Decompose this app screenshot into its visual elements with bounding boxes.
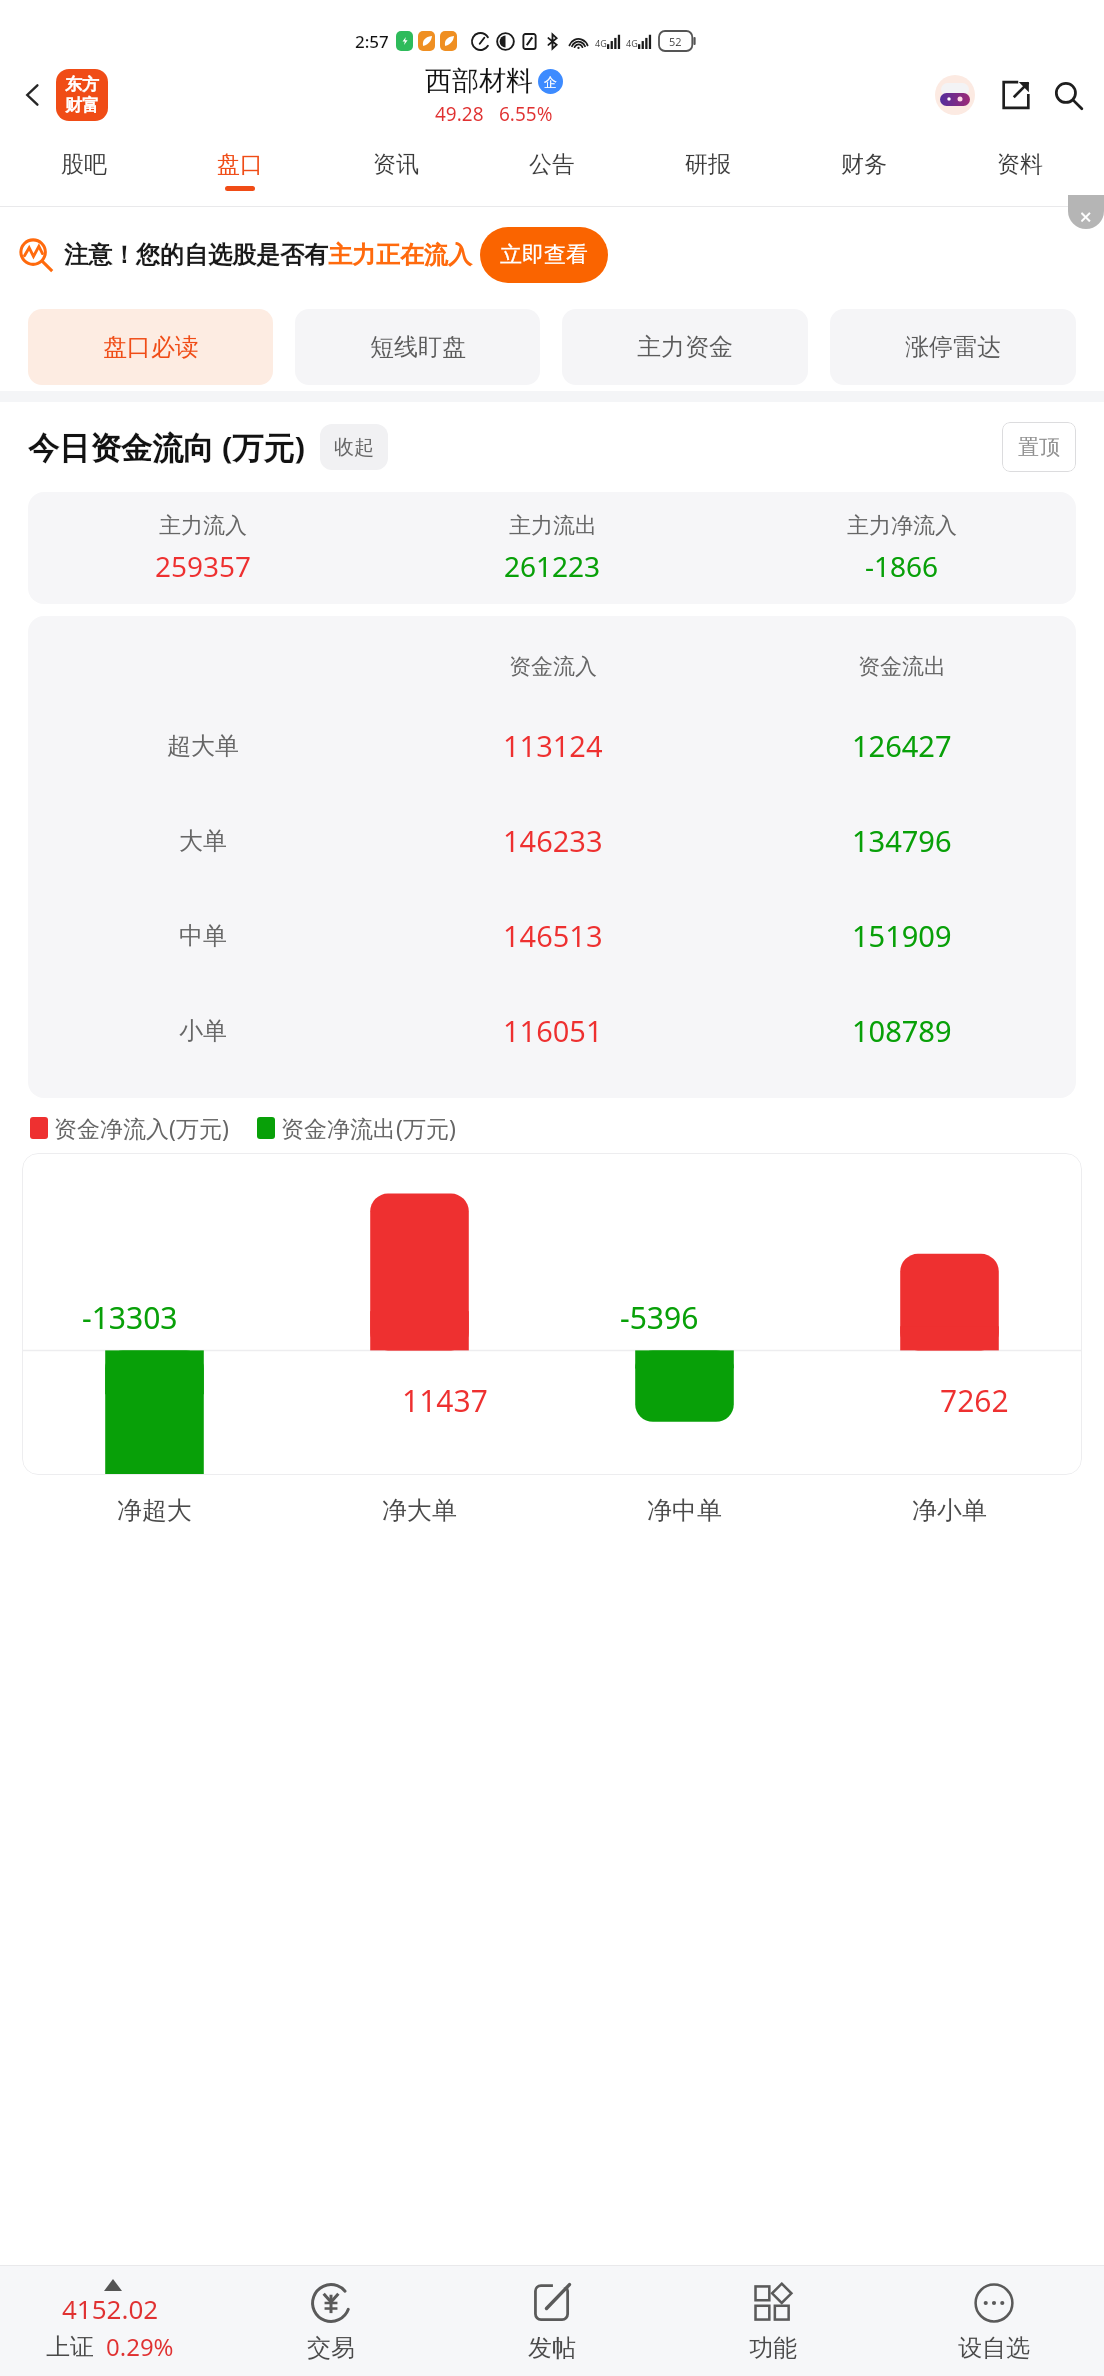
button[interactable]: 主力资金 [562, 309, 808, 385]
staticText: 盘口 [217, 150, 263, 179]
staticText: 4152.02 [62, 2291, 159, 2326]
staticText: 小单 [179, 1016, 227, 1046]
staticText: 企 [544, 74, 557, 90]
staticText: 大单 [179, 826, 227, 856]
staticText: 置顶 [1018, 434, 1060, 460]
staticText: 4G [626, 37, 638, 49]
staticText: ✕ [1079, 208, 1093, 227]
staticText: 49.28 [435, 101, 484, 127]
staticText: 主力正在流入 [328, 240, 472, 270]
button[interactable]: 公告 [474, 134, 630, 206]
button[interactable]: Close ad [1068, 195, 1104, 229]
staticText: 涨停雷达 [905, 332, 1001, 362]
staticText: 主力流出 [509, 512, 597, 540]
staticText: 6.55% [499, 101, 553, 127]
button[interactable]: 股吧 [6, 134, 162, 206]
button[interactable]: 收起 [320, 424, 388, 470]
button[interactable]: 西部材料 [425, 64, 563, 127]
button[interactable]: Share [990, 69, 1042, 121]
staticText: 财务 [841, 150, 887, 179]
staticText: -13303 [82, 1297, 178, 1338]
staticText: 东方 [65, 74, 99, 95]
button[interactable]: 资料 [942, 134, 1098, 206]
staticText: 主力净流入 [847, 512, 957, 540]
button[interactable]: 资讯 [318, 134, 474, 206]
button[interactable]: 功能 [662, 2266, 883, 2376]
staticText: -5396 [620, 1297, 699, 1338]
staticText: 财富 [65, 95, 99, 116]
staticText: 研报 [685, 150, 731, 179]
button[interactable]: 置顶 [1002, 422, 1076, 472]
button[interactable]: Search [1042, 69, 1094, 121]
staticText: 盘口必读 [103, 332, 199, 362]
staticText: 主力资金 [637, 332, 733, 362]
button[interactable]: Back [10, 72, 56, 118]
staticText: 134796 [852, 821, 952, 860]
staticText: 资金净流出(万元) [281, 1112, 456, 1143]
staticText: 2:57 [355, 30, 389, 53]
staticText: 151909 [852, 916, 952, 955]
button[interactable]: 涨停雷达 [830, 309, 1076, 385]
staticText: 收起 [334, 435, 374, 460]
button[interactable]: 设自选 [883, 2266, 1104, 2376]
button[interactable]: -13303 [22, 1153, 1082, 1475]
staticText: 资金流出 [858, 653, 946, 681]
button[interactable]: 短线盯盘 [295, 309, 540, 385]
button[interactable]: East Money [56, 69, 108, 121]
staticText: 净大单 [382, 1495, 457, 1526]
staticText: 资讯 [373, 150, 419, 179]
button[interactable]: 盘口 [162, 134, 318, 206]
staticText: 资金净流入(万元) [54, 1112, 229, 1143]
staticText: 短线盯盘 [370, 332, 466, 362]
button[interactable]: 研报 [630, 134, 786, 206]
staticText: 公告 [529, 150, 575, 179]
staticText: 发帖 [528, 2333, 576, 2363]
button[interactable]: 立即查看 [480, 227, 608, 283]
button[interactable]: 盘口必读 [28, 309, 273, 385]
staticText: 净超大 [117, 1495, 192, 1526]
staticText: 中单 [179, 921, 227, 951]
staticText: 11437 [402, 1380, 488, 1421]
staticText: 主力流入 [159, 512, 247, 540]
staticText: 立即查看 [500, 241, 588, 269]
button[interactable]: 发帖 [441, 2266, 662, 2376]
staticText: 交易 [307, 2333, 355, 2363]
staticText: 注意！您的自选股是否有 [64, 240, 328, 270]
staticText: 113124 [503, 726, 603, 765]
staticText: 108789 [852, 1011, 952, 1050]
staticText: 0.29% [106, 2330, 174, 2363]
staticText: 资料 [997, 150, 1043, 179]
staticText: 146233 [503, 821, 603, 860]
staticText: 功能 [749, 2333, 797, 2363]
staticText: 126427 [852, 726, 952, 765]
staticText: 资金流入 [509, 653, 597, 681]
staticText: 上证 [46, 2332, 94, 2362]
button[interactable]: 交易 [220, 2266, 441, 2376]
staticText: 52 [669, 34, 682, 49]
button[interactable]: AI assistant [928, 68, 982, 122]
staticText: 261223 [504, 547, 601, 585]
button[interactable]: 主力流入 [28, 492, 1076, 604]
button[interactable]: 4152.02 [0, 2266, 220, 2376]
staticText: 今日资金流向 (万元) [28, 426, 306, 468]
staticText: 7262 [940, 1380, 1009, 1421]
staticText: 超大单 [167, 731, 239, 761]
staticText: 116051 [503, 1011, 603, 1050]
staticText: -1866 [865, 547, 939, 585]
staticText: 4G [595, 37, 607, 49]
staticText: 净小单 [912, 1495, 987, 1526]
button[interactable]: 资金流入 [28, 616, 1076, 1098]
staticText: 西部材料 [425, 64, 533, 98]
staticText: 259357 [155, 547, 252, 585]
staticText: 设自选 [958, 2333, 1030, 2363]
staticText: 股吧 [61, 150, 107, 179]
button[interactable]: 财务 [786, 134, 942, 206]
staticText: 146513 [503, 916, 603, 955]
staticText: 净中单 [647, 1495, 722, 1526]
